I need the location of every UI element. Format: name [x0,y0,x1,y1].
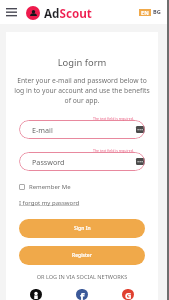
staticText: E-mail [32,125,53,135]
staticText: BG [153,8,161,16]
button[interactable]: Sign In [19,219,145,238]
staticText: The text field is required. [93,116,134,121]
button[interactable]: BG [153,8,161,16]
staticText: Sign In [74,225,91,232]
button[interactable]: Menu [2,4,21,19]
button[interactable]: I forgot my password [19,199,80,207]
staticText: f [80,289,85,300]
staticText: Register [72,252,92,259]
button[interactable]: EN [139,9,151,16]
button[interactable]: Sign in with Facebook [76,289,88,300]
staticText: Login form [6,56,158,69]
staticText: Remember Me [29,183,71,191]
staticText: G [125,289,132,300]
button[interactable]: Password [19,152,145,171]
staticText: Password [32,157,65,167]
staticText: OR LOG IN VIA SOCIAL NETWORKS [6,273,158,281]
button[interactable]: Sign in with Apple [30,289,42,300]
button[interactable]: Remember Me [19,183,71,191]
button[interactable]: Register [19,246,145,265]
button[interactable]: Sign in with Google [122,289,134,300]
staticText: The text field is required. [93,148,134,153]
button[interactable]: E-mail [19,120,145,139]
staticText: Enter your e-mail and password below to … [13,76,151,105]
staticText: EN [141,9,149,16]
staticText: AdScout [44,5,92,21]
